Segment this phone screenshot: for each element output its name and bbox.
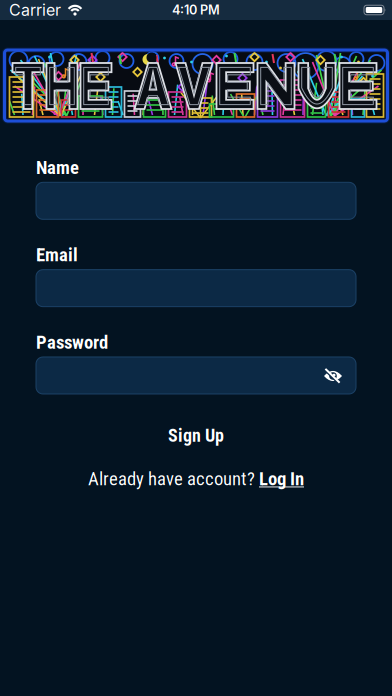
staticText: Email: [36, 244, 78, 266]
button[interactable]: Log In: [259, 468, 304, 489]
button[interactable]: Sign Up: [156, 421, 236, 450]
staticText: Name: [36, 157, 79, 178]
staticText: Sign Up: [168, 425, 224, 446]
button[interactable]: Email: [36, 270, 356, 307]
staticText: Log In: [259, 468, 304, 489]
staticText: 4:10 PM: [172, 2, 220, 18]
button[interactable]: Show password: [322, 364, 344, 386]
staticText: Already have account?: [88, 468, 259, 489]
button[interactable]: Password field: [36, 357, 356, 394]
button[interactable]: Name: [36, 182, 356, 219]
staticText: Password: [36, 332, 108, 353]
staticText: Carrier: [9, 0, 61, 20]
